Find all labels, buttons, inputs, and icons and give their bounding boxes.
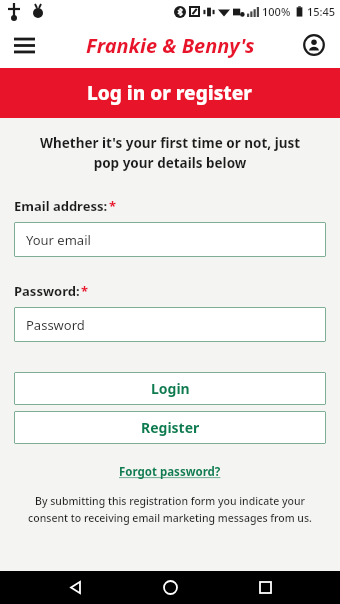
button[interactable]: Back [55,571,95,604]
staticText: Whether it's your first time or not, jus… [26,134,314,172]
button[interactable]: Password [14,307,326,342]
staticText: Log in or register [87,80,253,106]
staticText: 15:45 [307,4,336,19]
staticText: * [109,197,117,215]
staticText: 100% [262,4,291,19]
staticText: Forgot password? [119,464,221,480]
button[interactable]: Home [150,571,190,604]
button[interactable]: Menu [4,25,44,65]
staticText: * [81,282,89,300]
staticText: Your email [26,231,91,249]
button[interactable]: Forgot password? [113,461,227,483]
button[interactable]: Register [14,411,326,444]
staticText: Register [141,418,200,437]
staticText: By submitting this registration form you… [22,494,318,525]
button[interactable]: Login [14,372,326,405]
button[interactable]: Recents [245,571,285,604]
staticText: Login [151,379,190,398]
button[interactable]: Account [296,27,332,63]
staticText: Frankie & Benny's [86,32,255,59]
staticText: Password: [14,282,80,300]
staticText: Email address: [14,197,108,215]
button[interactable]: Your email [14,222,326,257]
staticText: Password [26,316,85,334]
